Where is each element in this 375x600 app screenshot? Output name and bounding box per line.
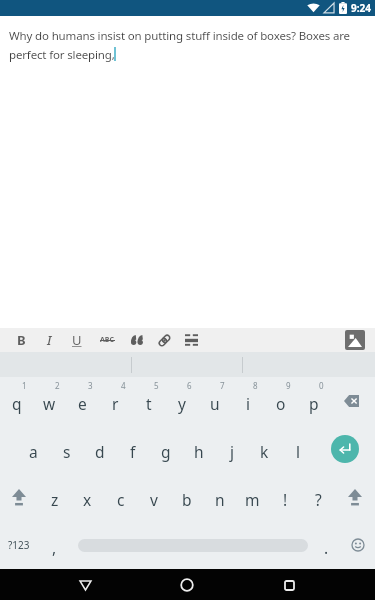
button[interactable]: [177, 328, 205, 352]
staticText: c: [117, 489, 125, 510]
staticText: j: [230, 441, 234, 462]
staticText: 2: [55, 380, 60, 391]
staticText: 0: [319, 380, 324, 391]
staticText: 9:24: [351, 1, 371, 15]
button[interactable]: [277, 573, 301, 597]
staticText: n: [215, 489, 225, 510]
button[interactable]: c: [104, 473, 137, 521]
button[interactable]: f: [116, 425, 149, 473]
button[interactable]: w: [33, 377, 66, 425]
button[interactable]: [78, 521, 308, 569]
button[interactable]: [335, 473, 375, 521]
staticText: f: [130, 441, 136, 462]
staticText: 7: [220, 380, 225, 391]
staticText: u: [210, 393, 220, 414]
staticText: Why do humans insist on putting stuff in…: [9, 28, 350, 62]
staticText: p: [309, 393, 319, 414]
button[interactable]: ?123: [0, 521, 38, 569]
staticText: .: [324, 537, 329, 558]
staticText: ?123: [8, 538, 30, 552]
button[interactable]: i: [231, 377, 264, 425]
staticText: s: [63, 441, 71, 462]
staticText: y: [178, 393, 186, 414]
button[interactable]: k: [248, 425, 281, 473]
button[interactable]: t: [132, 377, 165, 425]
button[interactable]: j: [215, 425, 248, 473]
staticText: 3: [88, 380, 93, 391]
button[interactable]: ?: [302, 473, 335, 521]
button[interactable]: I: [35, 328, 63, 352]
button[interactable]: u: [198, 377, 231, 425]
staticText: r: [112, 393, 119, 414]
button[interactable]: [73, 573, 97, 597]
staticText: e: [78, 393, 87, 414]
staticText: 4: [121, 380, 126, 391]
button[interactable]: .: [311, 521, 341, 569]
staticText: m: [245, 489, 260, 510]
button[interactable]: !: [269, 473, 302, 521]
button[interactable]: p: [297, 377, 330, 425]
staticText: ABC: [100, 335, 114, 345]
button[interactable]: l: [281, 425, 314, 473]
button[interactable]: b: [170, 473, 203, 521]
button[interactable]: [314, 425, 375, 473]
staticText: a: [29, 441, 38, 462]
staticText: l: [296, 441, 300, 462]
button[interactable]: r: [99, 377, 132, 425]
staticText: v: [150, 489, 158, 510]
button[interactable]: B: [7, 328, 35, 352]
staticText: w: [43, 393, 56, 414]
staticText: z: [51, 489, 59, 510]
staticText: I: [47, 331, 52, 349]
staticText: 1: [22, 380, 27, 391]
button[interactable]: o: [264, 377, 297, 425]
button[interactable]: v: [137, 473, 170, 521]
button[interactable]: n: [203, 473, 236, 521]
staticText: t: [146, 393, 152, 414]
button[interactable]: s: [50, 425, 83, 473]
button[interactable]: m: [236, 473, 269, 521]
button[interactable]: a: [17, 425, 50, 473]
button[interactable]: [123, 328, 151, 352]
staticText: B: [17, 331, 26, 349]
staticText: i: [246, 393, 250, 414]
staticText: ?: [315, 489, 322, 510]
staticText: d: [95, 441, 105, 462]
button[interactable]: e: [66, 377, 99, 425]
button[interactable]: d: [83, 425, 116, 473]
staticText: k: [260, 441, 269, 462]
button[interactable]: U: [63, 328, 91, 352]
staticText: g: [161, 441, 171, 462]
button[interactable]: x: [71, 473, 104, 521]
button[interactable]: [175, 573, 199, 597]
button[interactable]: ABC: [91, 328, 123, 352]
button[interactable]: h: [182, 425, 215, 473]
button[interactable]: y: [165, 377, 198, 425]
staticText: 6: [187, 380, 192, 391]
staticText: !: [283, 489, 288, 510]
button[interactable]: [151, 328, 177, 352]
button[interactable]: z: [38, 473, 71, 521]
staticText: 5: [154, 380, 159, 391]
button[interactable]: g: [149, 425, 182, 473]
button[interactable]: q: [0, 377, 33, 425]
staticText: q: [12, 393, 22, 414]
button[interactable]: [341, 521, 375, 569]
button[interactable]: [345, 330, 365, 350]
staticText: U: [72, 331, 82, 349]
staticText: 8: [253, 380, 258, 391]
staticText: o: [276, 393, 286, 414]
staticText: ,: [52, 537, 57, 558]
staticText: h: [194, 441, 204, 462]
staticText: 9: [286, 380, 291, 391]
button[interactable]: ,: [38, 521, 71, 569]
button[interactable]: [330, 377, 375, 425]
button[interactable]: [0, 473, 38, 521]
staticText: x: [83, 489, 92, 510]
staticText: b: [182, 489, 192, 510]
